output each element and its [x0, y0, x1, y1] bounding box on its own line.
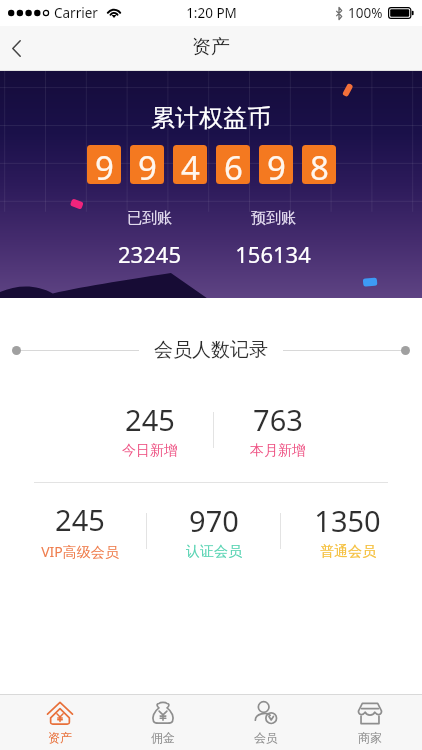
staticText: 9 — [95, 145, 114, 184]
staticText: 累计权益币 — [151, 103, 271, 133]
staticText: VIP高级会员 — [41, 542, 119, 561]
staticText: 156134 — [235, 239, 311, 269]
staticText: 会员人数记录 — [154, 338, 268, 362]
staticText: 1:20 PM — [186, 4, 237, 22]
staticText: 9 — [267, 145, 286, 184]
staticText: 23245 — [118, 239, 181, 269]
staticText: 763 — [253, 400, 303, 439]
staticText: 245 — [55, 500, 105, 539]
staticText: 佣金 — [151, 730, 175, 745]
staticText: 普通会员 — [320, 543, 376, 561]
staticText: 245 — [125, 400, 175, 439]
staticText: 资产 — [192, 35, 230, 59]
staticText: 资产 — [48, 730, 72, 745]
staticText: 本月新增 — [250, 442, 306, 460]
button[interactable]: Back — [0, 26, 32, 71]
staticText: 会员 — [254, 730, 278, 745]
staticText: 6 — [224, 145, 243, 184]
staticText: 认证会员 — [186, 543, 242, 561]
staticText: 8 — [310, 145, 329, 184]
button[interactable]: 资产 — [8, 695, 111, 750]
staticText: 4 — [181, 145, 200, 184]
staticText: 9 — [138, 145, 157, 184]
button[interactable]: 佣金 — [111, 695, 214, 750]
staticText: 商家 — [358, 730, 382, 745]
staticText: 970 — [189, 501, 239, 540]
button[interactable]: 商家 — [318, 695, 422, 750]
staticText: 100% — [348, 4, 383, 22]
staticText: Carrier — [54, 4, 98, 22]
staticText: 1350 — [314, 501, 381, 540]
button[interactable]: 会员 — [214, 695, 318, 750]
staticText: 今日新增 — [122, 442, 178, 460]
staticText: 预到账 — [251, 209, 296, 228]
staticText: 已到账 — [127, 209, 172, 228]
